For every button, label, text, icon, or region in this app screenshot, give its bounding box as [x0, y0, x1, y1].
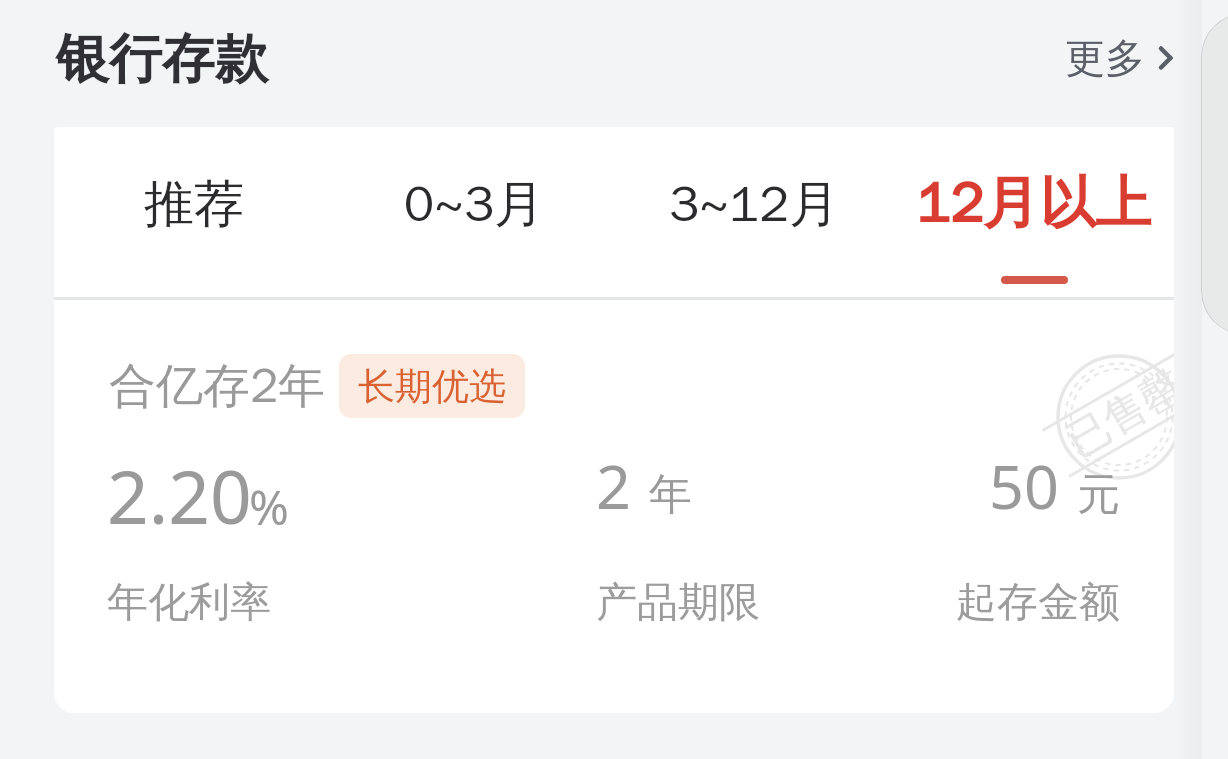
staticText: 3~12月 — [669, 173, 839, 236]
button[interactable]: 已售罄 — [54, 300, 1174, 713]
staticText: 推荐 — [144, 173, 244, 236]
staticText: 产品期限 — [596, 577, 760, 629]
button[interactable]: 更多 — [1065, 33, 1178, 83]
button[interactable]: 3~12月 — [614, 127, 894, 298]
staticText: 年化利率 — [107, 577, 271, 629]
staticText: 起存金额 — [956, 577, 1120, 629]
button[interactable]: 12月以上 — [894, 127, 1174, 298]
staticText: 2 — [596, 444, 631, 527]
staticText: 合亿存2年 — [109, 357, 326, 416]
staticText: 年 — [649, 468, 692, 522]
other: More — [1158, 33, 1178, 83]
staticText: 已售罄 — [1057, 359, 1174, 468]
staticText: 元 — [1077, 468, 1120, 522]
staticText: 12月以上 — [916, 168, 1152, 239]
staticText: 0~3月 — [404, 173, 544, 236]
button[interactable]: 0~3月 — [334, 127, 614, 298]
staticText: 银行存款 — [56, 26, 268, 93]
staticText: 50 — [989, 444, 1059, 527]
staticText: 长期优选 — [358, 363, 506, 410]
staticText: 2.20 — [107, 446, 252, 545]
staticText: % — [249, 474, 289, 539]
staticText: 更多 — [1065, 33, 1145, 83]
button[interactable]: 推荐 — [54, 127, 334, 298]
